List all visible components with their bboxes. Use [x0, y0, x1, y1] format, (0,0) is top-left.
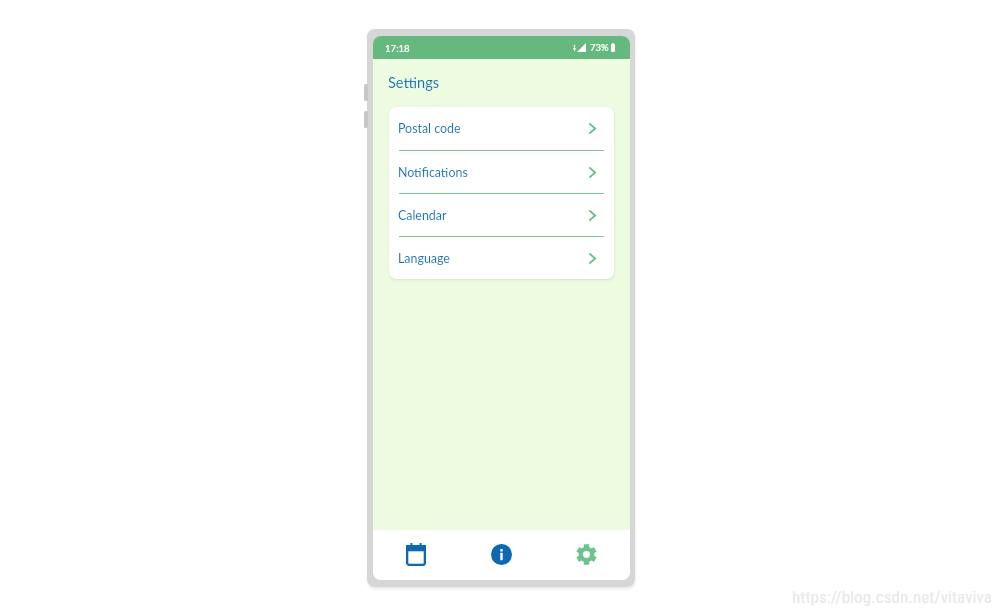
button[interactable]: Info: [458, 530, 544, 580]
staticText: Language: [398, 251, 450, 266]
button[interactable]: Calendar: [389, 194, 614, 236]
staticText: 73%: [590, 42, 609, 53]
staticText: Settings: [388, 74, 440, 92]
button[interactable]: Postal code: [389, 107, 614, 150]
button[interactable]: Settings: [544, 530, 630, 580]
button[interactable]: Language: [389, 237, 614, 279]
staticText: Postal code: [398, 121, 461, 136]
button[interactable]: Notifications: [389, 151, 614, 193]
staticText: 17:18: [385, 43, 410, 55]
staticText: Calendar: [398, 208, 447, 223]
button[interactable]: Calendar: [373, 530, 458, 580]
staticText: Notifications: [398, 165, 468, 180]
staticText: https://blog.csdn.net/vitaviva: [792, 587, 992, 607]
